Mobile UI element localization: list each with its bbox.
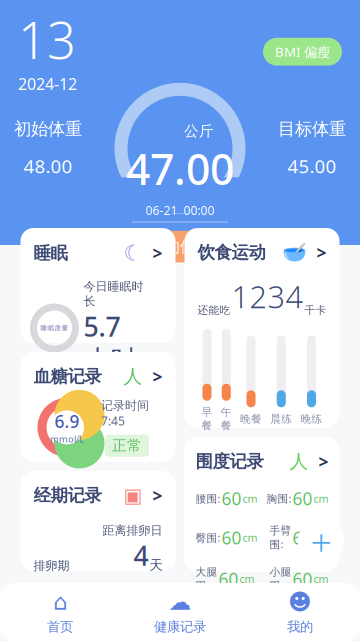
staticText: 健康记录 — [154, 619, 206, 635]
staticText: 晚餐 — [240, 412, 262, 425]
staticText: 60 — [292, 487, 312, 510]
staticText: 经期记录 — [33, 485, 101, 506]
button[interactable]: 血糖记录 — [20, 352, 175, 462]
staticText: 早餐 — [201, 406, 212, 432]
staticText: BMI 偏瘦 — [275, 43, 330, 61]
staticText: 今日睡眠时长 — [83, 279, 143, 309]
staticText: > — [318, 450, 328, 473]
staticText: 公斤 — [184, 122, 214, 140]
staticText: 排卵期 — [33, 558, 69, 573]
staticText: 4 — [133, 538, 148, 573]
staticText: 60 — [221, 526, 241, 549]
staticText: 距离排卵日 — [102, 523, 162, 538]
staticText: mmol/L — [50, 433, 84, 445]
staticText: 血糖记录 — [33, 366, 101, 387]
staticText: 饮食运动 — [197, 242, 265, 263]
staticText: cm — [313, 491, 328, 506]
button[interactable]: 饮食运动 — [184, 228, 339, 428]
staticText: 睡眠 — [33, 242, 67, 264]
staticText: 人 — [289, 450, 308, 473]
button[interactable]: 经期记录 — [20, 471, 175, 571]
staticText: 45.00 — [287, 154, 336, 178]
button[interactable]: 睡眠 — [20, 228, 175, 343]
staticText: 臀围: — [195, 531, 220, 545]
staticText: 晚练 — [300, 412, 322, 425]
staticText: 初始体重 — [14, 118, 82, 140]
button[interactable]: ☻ — [240, 581, 360, 641]
staticText: 围度记录 — [195, 451, 263, 472]
staticText: 60 — [221, 487, 241, 510]
staticText: 60 — [292, 567, 312, 590]
staticText: 人 — [123, 365, 142, 388]
staticText: ☻ — [288, 589, 312, 615]
staticText: 手臂围: — [269, 524, 291, 551]
staticText: 🥣 — [281, 241, 306, 264]
staticText: 我的 — [287, 619, 313, 635]
button[interactable]: BMI 偏瘦 — [263, 38, 342, 66]
staticText: 大腿围: — [195, 565, 217, 593]
staticText: ☁ — [168, 589, 191, 615]
staticText: > — [152, 484, 162, 507]
staticText: 睡眠质量 — [40, 324, 68, 332]
staticText: cm — [239, 572, 254, 586]
staticText: 记录时间7:45 — [101, 398, 149, 429]
staticText: > — [152, 365, 162, 388]
staticText: 6.9 — [54, 410, 79, 433]
staticText: + — [310, 516, 331, 566]
staticText: ▣ — [123, 484, 142, 507]
staticText: cm — [242, 531, 257, 545]
staticText: 目标体重 — [278, 118, 346, 140]
staticText: cm — [313, 531, 328, 545]
staticText: 还能吃 — [197, 304, 230, 317]
staticText: 2024-12 — [18, 73, 77, 94]
staticText: 1234 — [231, 276, 303, 317]
staticText: 千卡 — [304, 304, 326, 317]
staticText: cm — [242, 491, 257, 506]
staticText: 我的体重 — [148, 237, 212, 256]
staticText: 晨练 — [270, 412, 292, 425]
staticText: 小腿围: — [269, 565, 291, 593]
staticText: ☾ — [123, 241, 142, 265]
staticText: 5.7小时 — [83, 309, 137, 377]
staticText: 13 — [18, 6, 76, 73]
button[interactable]: ⌂ — [0, 581, 120, 641]
button[interactable]: 我的体重 — [128, 231, 232, 262]
staticText: 胸围: — [266, 491, 291, 506]
staticText: 正常 — [112, 437, 142, 455]
staticText: 腰围: — [195, 491, 220, 506]
staticText: 06-21 00:00 — [145, 202, 214, 218]
button[interactable]: ☁ — [120, 581, 240, 641]
staticText: 60 — [218, 567, 238, 590]
staticText: 48.00 — [23, 154, 72, 178]
button[interactable]: Add record — [298, 516, 344, 566]
button[interactable]: 围度记录 — [184, 437, 339, 572]
staticText: cm — [313, 572, 328, 586]
staticText: > — [316, 241, 326, 264]
staticText: > — [152, 242, 162, 265]
staticText: 首页 — [47, 619, 73, 635]
staticText: 60 — [292, 526, 312, 549]
staticText: 47.00 — [126, 140, 234, 197]
staticText: ⌂ — [53, 589, 67, 615]
staticText: 午餐 — [221, 406, 232, 432]
staticText: 天 — [149, 557, 162, 573]
